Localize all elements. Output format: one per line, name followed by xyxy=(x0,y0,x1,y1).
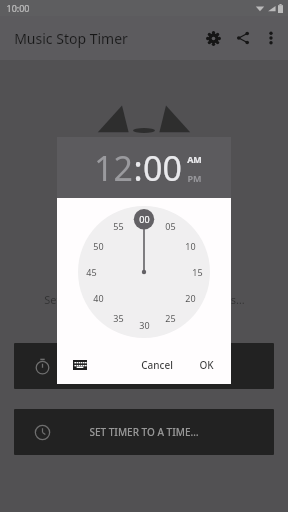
button[interactable]: Share xyxy=(228,23,258,53)
button[interactable]: Settings xyxy=(198,23,228,53)
staticText: 30 xyxy=(139,319,150,331)
staticText: 20 xyxy=(185,292,196,304)
button[interactable]: OK xyxy=(192,354,221,376)
staticText: 25 xyxy=(165,312,176,324)
staticText: 50 xyxy=(93,240,104,252)
button[interactable]: Cancel xyxy=(134,354,180,376)
staticText: Set the timer to a number of seconds… xyxy=(44,292,245,307)
staticText: 05 xyxy=(165,220,176,232)
staticText: : xyxy=(133,145,143,191)
button[interactable]: Switch to text input xyxy=(67,352,93,378)
staticText: 55 xyxy=(113,220,124,232)
button[interactable]: More options xyxy=(258,25,284,51)
staticText: 10 xyxy=(185,240,196,252)
button[interactable]: SET TIMER TO SECONDS… xyxy=(14,343,274,389)
staticText: 10:00 xyxy=(6,2,30,14)
staticText: 35 xyxy=(113,312,124,324)
staticText: 00 xyxy=(139,213,150,225)
staticText: SET TIMER TO A TIME… xyxy=(89,425,199,439)
button[interactable]: PM xyxy=(187,172,202,184)
button[interactable]: SET TIMER TO A TIME… xyxy=(14,409,274,455)
staticText: 45 xyxy=(86,266,97,278)
button[interactable]: AM xyxy=(187,153,202,165)
staticText: SET TIMER TO SECONDS… xyxy=(83,359,205,373)
staticText: OK xyxy=(199,358,214,372)
staticText: 15 xyxy=(192,266,203,278)
button[interactable]: 00 xyxy=(143,145,182,191)
staticText: 40 xyxy=(93,292,104,304)
button[interactable]: 12 xyxy=(94,145,133,191)
staticText: Cancel xyxy=(141,358,173,372)
staticText: Music Stop Timer xyxy=(14,29,128,48)
